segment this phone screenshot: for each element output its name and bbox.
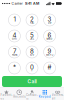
staticText: 5 — [30, 32, 34, 39]
staticText: Favorites — [0, 93, 12, 100]
button[interactable]: 9 — [44, 46, 56, 58]
button[interactable]: # — [44, 62, 56, 74]
staticText: ABC — [29, 21, 34, 24]
button[interactable]: 0 — [26, 62, 38, 74]
button[interactable]: 6 — [44, 30, 56, 42]
staticText: PQRS — [12, 53, 17, 56]
button[interactable]: Recents — [13, 90, 26, 98]
staticText: + — [31, 69, 33, 72]
staticText: 7 — [13, 48, 16, 55]
staticText: GHI — [12, 37, 17, 40]
button[interactable]: 7 — [8, 46, 20, 58]
staticText: TUV — [29, 53, 34, 56]
staticText: MNO — [47, 37, 53, 40]
button[interactable]: 1 — [8, 14, 20, 26]
button[interactable]: Call — [2, 76, 62, 87]
button[interactable]: 5 — [26, 30, 38, 42]
button[interactable]: 3 — [44, 14, 56, 26]
staticText: 3 — [48, 16, 52, 23]
staticText: 2 — [30, 16, 34, 23]
staticText: JKL — [30, 37, 34, 40]
staticText: Keypad — [39, 95, 51, 98]
staticText: # — [48, 64, 52, 71]
button[interactable]: * — [8, 62, 20, 74]
staticText: * — [13, 64, 16, 71]
staticText: Recents — [13, 95, 25, 98]
button[interactable]: Contacts — [26, 90, 38, 98]
staticText: WXYZ — [46, 53, 53, 56]
staticText: 0 — [30, 64, 34, 71]
staticText: Carrier — [11, 1, 22, 6]
button[interactable]: 2 — [26, 14, 38, 26]
button[interactable]: Voicemail — [51, 90, 64, 98]
staticText: 9:41 AM — [25, 1, 39, 6]
staticText: Voicemail — [52, 93, 64, 100]
button[interactable]: 8 — [26, 46, 38, 58]
staticText: Contacts — [26, 93, 38, 100]
staticText: 9 — [48, 48, 52, 55]
staticText: 1 — [13, 16, 15, 23]
staticText: Call — [27, 79, 36, 84]
button[interactable]: Keypad — [38, 90, 51, 98]
button[interactable]: 4 — [8, 30, 20, 42]
staticText: 8 — [30, 48, 34, 55]
staticText: 4 — [12, 32, 16, 39]
staticText: DEF — [48, 21, 52, 24]
button[interactable]: Favorites — [0, 90, 13, 98]
staticText: 6 — [48, 32, 52, 39]
